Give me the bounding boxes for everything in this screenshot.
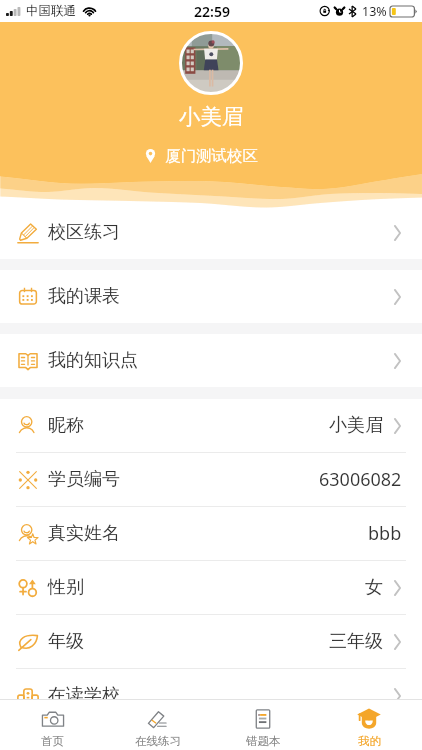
staticText: 22:59	[194, 2, 230, 21]
staticText: 首页	[41, 734, 64, 748]
staticText: 我的知识点	[48, 349, 138, 372]
staticText: 校区练习	[48, 221, 120, 244]
staticText: 真实姓名	[48, 522, 120, 545]
staticText: 在线练习	[135, 734, 181, 748]
button[interactable]: 真实姓名	[0, 507, 422, 560]
button[interactable]: 昵称	[0, 399, 422, 452]
staticText: 年级	[48, 630, 84, 653]
button[interactable]: 性别	[0, 561, 422, 614]
staticText: 厦门测试校区	[165, 146, 258, 166]
button[interactable]: 我的课表	[0, 270, 422, 323]
staticText: 我的课表	[48, 285, 120, 308]
staticText: 小美眉	[329, 414, 383, 437]
staticText: 中国联通	[26, 3, 76, 19]
staticText: 学员编号	[48, 468, 120, 491]
staticText: 13%	[362, 3, 387, 20]
button[interactable]: 学员编号	[0, 453, 422, 506]
button[interactable]: 首页	[0, 700, 105, 750]
staticText: bbb	[368, 521, 402, 546]
staticText: 性别	[48, 576, 84, 599]
button[interactable]: 错题本	[210, 700, 316, 750]
button[interactable]: 校区练习	[0, 206, 422, 259]
staticText: 昵称	[48, 414, 84, 437]
staticText: 三年级	[329, 630, 383, 653]
staticText: 错题本	[246, 734, 281, 748]
button[interactable]: 年级	[0, 615, 422, 668]
button[interactable]: 在读学校	[0, 669, 422, 722]
staticText: 我的	[358, 734, 381, 748]
button[interactable]: 我的	[316, 700, 422, 750]
button[interactable]: 在线练习	[105, 700, 210, 750]
staticText: 小美眉	[179, 103, 244, 130]
staticText: 在读学校	[48, 684, 120, 707]
staticText: 63006082	[319, 467, 402, 492]
button[interactable]: 我的知识点	[0, 334, 422, 387]
staticText: 女	[365, 576, 383, 599]
